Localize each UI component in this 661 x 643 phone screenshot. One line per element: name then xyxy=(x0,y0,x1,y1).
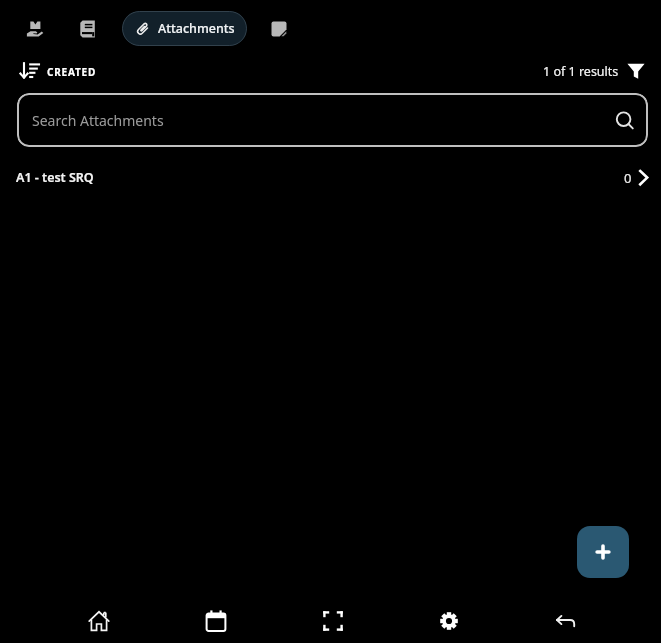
button[interactable] xyxy=(18,61,40,83)
staticText: A1 - test SRQ xyxy=(16,169,94,186)
button[interactable] xyxy=(193,598,238,643)
staticText: Attachments xyxy=(158,20,235,37)
button[interactable] xyxy=(543,598,588,643)
button[interactable] xyxy=(23,17,47,41)
button[interactable] xyxy=(625,61,647,83)
staticText: Search Attachments xyxy=(32,111,164,130)
button[interactable] xyxy=(426,598,471,643)
button[interactable]: Search Attachments xyxy=(17,93,648,147)
button[interactable] xyxy=(267,17,291,41)
button[interactable]: A1 - test SRQ xyxy=(0,157,661,198)
button[interactable] xyxy=(75,17,99,41)
staticText: CREATED xyxy=(47,65,97,79)
staticText: 1 of 1 results xyxy=(543,63,619,80)
button[interactable] xyxy=(310,598,355,643)
staticText: 0 xyxy=(624,169,632,187)
button[interactable] xyxy=(76,598,121,643)
button[interactable]: Attachments xyxy=(122,11,247,46)
button[interactable] xyxy=(577,526,629,578)
